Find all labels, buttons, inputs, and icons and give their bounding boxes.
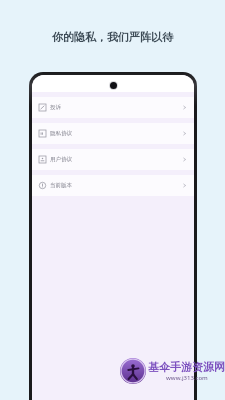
button[interactable]: 隐私协议 [32,123,194,144]
staticText: 基伞手游资源网 [148,360,225,374]
staticText: 用户协议 [50,156,72,163]
button[interactable]: 投诉 [32,97,194,118]
button[interactable]: 当前版本 [32,175,194,196]
staticText: www.j313.com [166,374,208,382]
other: Watermark [120,358,225,384]
button[interactable]: 用户协议 [32,149,194,170]
staticText: 你的隐私，我们严阵以待 [52,30,173,44]
staticText: 隐私协议 [50,130,72,137]
staticText: 当前版本 [50,182,72,189]
staticText: 投诉 [50,104,61,111]
